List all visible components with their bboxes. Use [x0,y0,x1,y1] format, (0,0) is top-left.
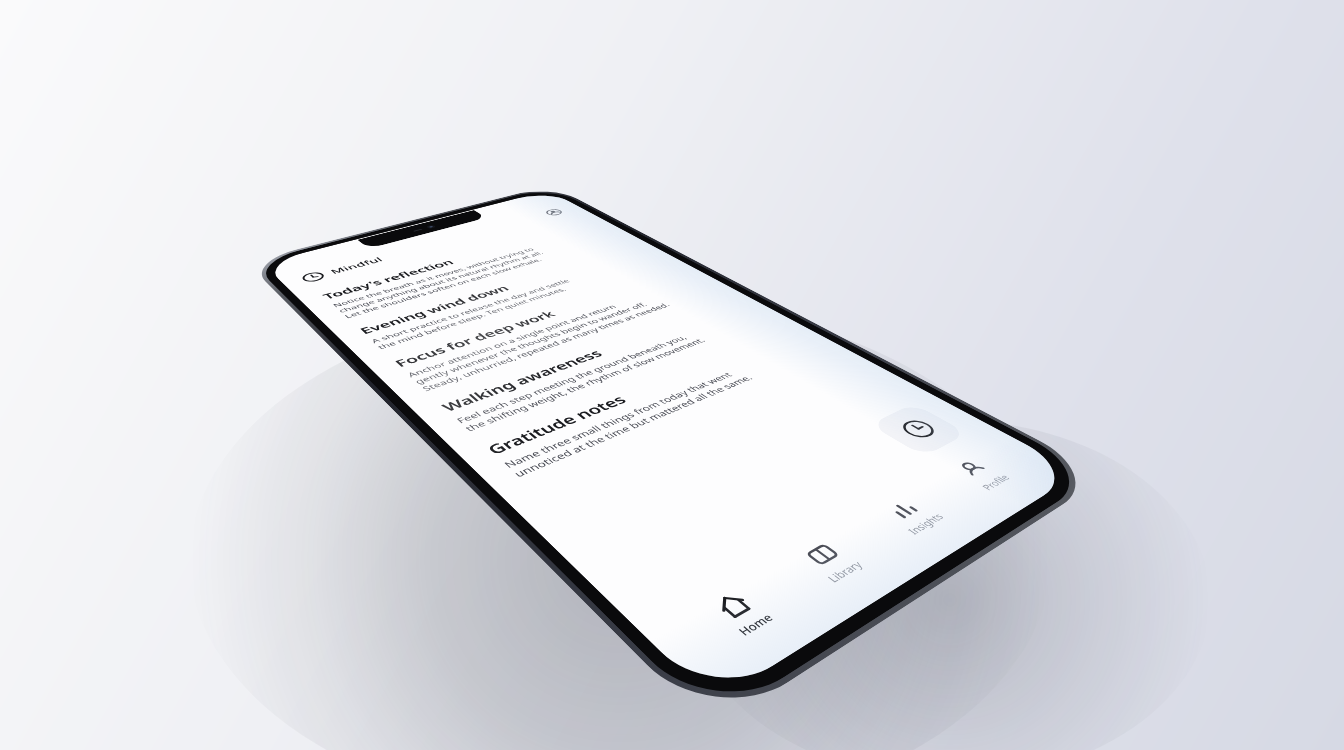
button[interactable]: Focus for deep work [386,265,719,398]
staticText: unnoticed at the time but mattered all t… [511,373,756,479]
button[interactable]: Gratitude notes [477,324,830,485]
staticText: Library [824,558,867,586]
staticText: A short practice to release the day and … [369,278,573,345]
button[interactable]: Library [771,524,891,602]
staticText: Notice the breath as it moves, without t… [331,246,537,309]
staticText: change anything about its natural rhythm… [337,250,546,314]
staticText: the mind before sleep. Ten quiet minutes… [375,286,569,351]
staticText: Walking awareness [437,347,607,415]
button[interactable]: Start session [870,403,968,457]
button[interactable]: Evening wind down [352,242,664,355]
staticText: Profile [978,472,1014,493]
staticText: Insights [904,511,948,538]
staticText: Steady, unhurried, repeated as many time… [420,301,673,393]
staticText: Gratitude notes [482,392,631,458]
staticText: Mindful [328,255,385,275]
button[interactable]: Home [678,571,805,659]
button[interactable]: Account [536,206,571,219]
button[interactable]: Profile [928,445,1035,506]
staticText: Focus for deep work [391,308,560,370]
staticText: the shifting weight, the rhythm of slow … [462,336,708,433]
staticText: Evening wind down [356,283,513,337]
staticText: Let the shoulders soften on each slow ex… [342,257,544,320]
button[interactable]: Mindful [275,199,590,294]
staticText: gently whenever the thoughts begin to wa… [412,301,650,386]
button[interactable]: Walking awareness [432,296,771,439]
staticText: Name three small things from today that … [501,370,736,470]
staticText: Home [734,610,777,639]
staticText: Feel each step meeting the ground beneat… [454,333,690,425]
staticText: Today's reflection [320,257,458,301]
button[interactable]: Today's reflection [316,218,622,323]
button[interactable]: Insights [855,482,967,551]
staticText: Anchor attention on a single point and r… [405,303,619,379]
